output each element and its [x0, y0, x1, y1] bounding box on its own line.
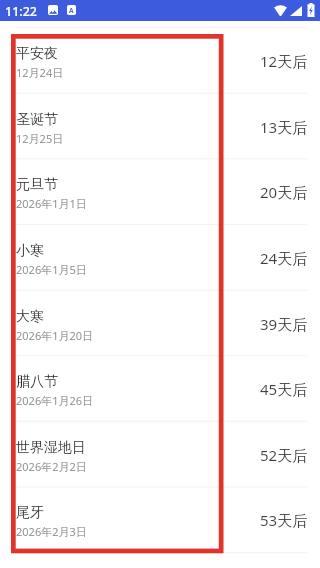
button[interactable]: 圣诞节 [0, 93, 320, 159]
staticText: 2026年1月26日 [16, 393, 94, 408]
button[interactable]: 世界湿地日 [0, 421, 320, 487]
staticText: 2026年1月20日 [16, 328, 94, 343]
staticText: 45天后 [260, 379, 308, 399]
staticText: 2026年2月2日 [16, 459, 87, 474]
staticText: 53天后 [260, 510, 308, 530]
other: Screenshot notification [48, 5, 58, 15]
button[interactable]: 平安夜 [0, 27, 320, 93]
button[interactable]: 腊八节 [0, 355, 320, 421]
staticText: 12月24日 [16, 65, 64, 80]
button[interactable]: 尾牙 [0, 486, 320, 552]
other: Battery charging [307, 3, 315, 17]
staticText: 12月25日 [16, 131, 64, 146]
staticText: A [69, 6, 74, 15]
staticText: 平安夜 [16, 45, 58, 63]
staticText: 24天后 [260, 248, 308, 268]
staticText: 圣诞节 [16, 111, 58, 129]
staticText: 2026年1月5日 [16, 262, 87, 277]
other: App notification [67, 5, 76, 15]
staticText: 腊八节 [16, 373, 58, 391]
button[interactable]: 大寒 [0, 290, 320, 356]
staticText: 2026年2月3日 [16, 524, 87, 539]
button[interactable]: 元旦节 [0, 158, 320, 224]
staticText: 元旦节 [16, 176, 58, 194]
staticText: 12天后 [260, 51, 308, 71]
staticText: 39天后 [260, 314, 308, 334]
staticText: 小寒 [16, 242, 44, 260]
staticText: 尾牙 [16, 504, 44, 522]
staticText: 13天后 [260, 117, 308, 137]
staticText: 大寒 [16, 308, 44, 326]
staticText: 20天后 [260, 182, 308, 202]
other: Mobile signal [290, 6, 302, 16]
other: Wi-Fi [274, 5, 287, 16]
staticText: 11:22 [5, 3, 38, 20]
staticText: 52天后 [260, 445, 308, 465]
button[interactable]: 小寒 [0, 224, 320, 290]
staticText: 世界湿地日 [16, 439, 86, 457]
staticText: 2026年1月1日 [16, 196, 87, 211]
